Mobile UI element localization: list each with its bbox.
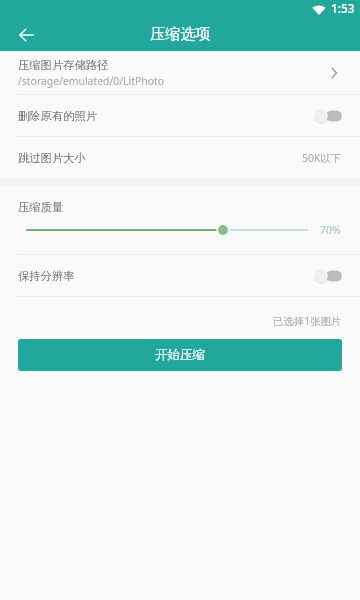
other: Wi-Fi xyxy=(312,5,326,15)
staticText: /storage/emulated/0/LitPhoto xyxy=(18,74,164,88)
staticText: 压缩选项 xyxy=(150,24,211,43)
staticText: 50K以下 xyxy=(302,151,342,165)
button[interactable]: 删除原有的照片 xyxy=(0,95,360,136)
staticText: 已选择1张图片 xyxy=(273,314,342,328)
staticText: 1:53 xyxy=(331,0,355,15)
staticText: 删除原有的照片 xyxy=(18,109,98,123)
button[interactable]: 压缩图片存储路径 xyxy=(0,51,360,94)
staticText: 开始压缩 xyxy=(155,347,205,363)
staticText: 保持分辨率 xyxy=(18,269,75,283)
other: Choose folder xyxy=(328,66,342,80)
button[interactable]: 跳过图片大小 xyxy=(0,137,360,178)
staticText: 70% xyxy=(320,223,341,237)
button[interactable]: Back xyxy=(12,20,40,48)
staticText: 跳过图片大小 xyxy=(18,151,86,165)
staticText: 压缩质量 xyxy=(18,200,64,214)
button[interactable]: 开始压缩 xyxy=(18,339,342,371)
button[interactable]: 保持分辨率 xyxy=(0,255,360,296)
staticText: 压缩图片存储路径 xyxy=(18,58,109,72)
